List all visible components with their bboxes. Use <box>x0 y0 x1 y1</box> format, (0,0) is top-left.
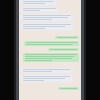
button[interactable]: Sent message <box>58 87 79 90</box>
button[interactable]: Message <box>21 68 73 73</box>
button[interactable]: Message <box>21 23 73 30</box>
button[interactable]: Message <box>21 75 72 82</box>
button[interactable]: Sent message <box>48 48 79 51</box>
button[interactable]: Message <box>21 7 58 12</box>
button[interactable]: Message <box>21 14 73 21</box>
button[interactable]: Sent message <box>55 36 79 39</box>
button[interactable]: Sent message <box>23 53 79 62</box>
button[interactable]: Message <box>21 0 56 5</box>
button[interactable]: Sent message <box>24 41 79 46</box>
